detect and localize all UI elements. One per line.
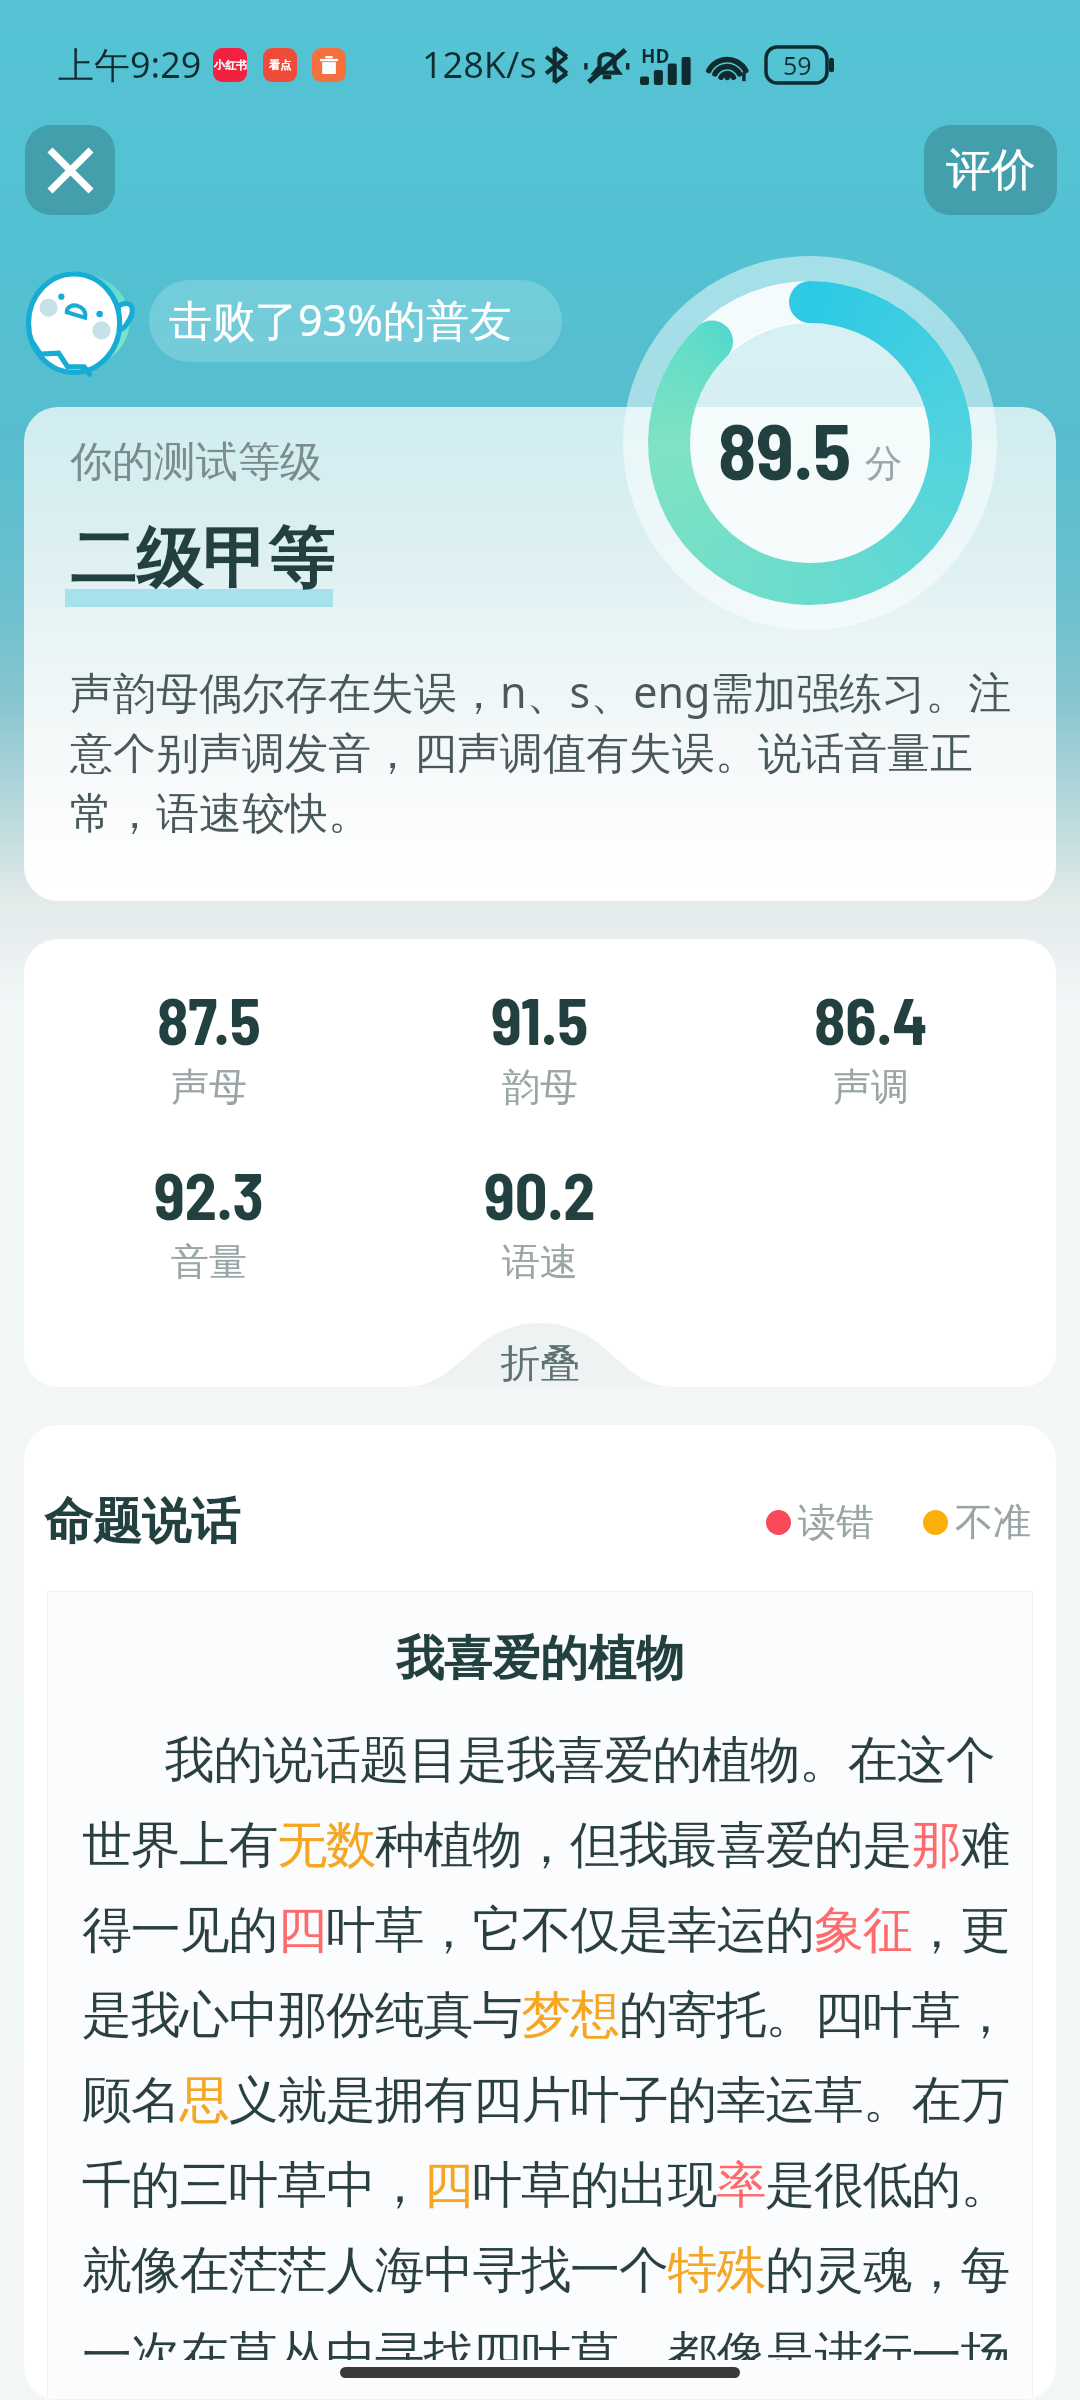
staticText: 89.5	[718, 402, 852, 496]
staticText: HD	[641, 43, 670, 69]
staticText: 小红书	[214, 58, 247, 72]
staticText: 声调	[833, 1063, 909, 1111]
staticText: 音量	[171, 1238, 247, 1286]
staticText: 二级甲等	[70, 517, 334, 600]
staticText: 看点	[269, 58, 291, 72]
button[interactable]: Close	[25, 125, 115, 215]
staticText: 上午9:29	[58, 40, 202, 89]
staticText: 折叠	[500, 1338, 580, 1387]
staticText: 87.5	[157, 981, 261, 1058]
staticText: 韵母	[502, 1063, 578, 1111]
staticText: 读错	[798, 1498, 874, 1546]
staticText: 声韵母偶尔存在失误，n、s、eng需加强练习。注意个别声调发音，四声调值有失误。…	[70, 662, 1041, 841]
staticText: 我喜爱的植物	[47, 1629, 1033, 1689]
staticText: 你的测试等级	[70, 436, 322, 489]
staticText: 90.2	[484, 1156, 596, 1233]
button[interactable]: 评价	[924, 125, 1057, 215]
staticText: 不准	[955, 1498, 1031, 1546]
staticText: 59	[783, 48, 812, 82]
staticText: 128K/s	[422, 40, 537, 89]
staticText: 评价	[946, 142, 1036, 199]
staticText: 91.5	[491, 981, 589, 1058]
staticText: 声母	[171, 1063, 247, 1111]
staticText: 语速	[502, 1238, 578, 1286]
staticText: 分	[865, 440, 902, 487]
staticText: 我的说话题目是我喜爱的植物。在这个世界上有无数种植物，但我最喜爱的是那难得一见的…	[82, 1724, 1027, 2360]
staticText: 86.4	[814, 981, 928, 1058]
staticText: 92.3	[154, 1156, 264, 1233]
staticText: 击败了93%的普友	[169, 290, 512, 349]
staticText: 命题说话	[44, 1491, 240, 1553]
button[interactable]: 折叠	[24, 1323, 1056, 1387]
